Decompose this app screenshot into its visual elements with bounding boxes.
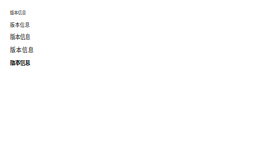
- staticText: 版本信息: [10, 32, 30, 40]
- staticText: 版本信息: [10, 45, 34, 53]
- staticText: 版本信息: [10, 21, 30, 28]
- staticText: 版本信息: [10, 58, 30, 66]
- staticText: 版本信息: [10, 10, 26, 16]
